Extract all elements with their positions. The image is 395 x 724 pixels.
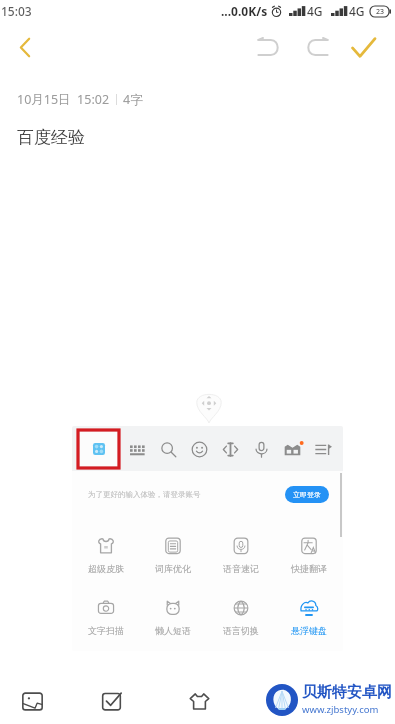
button[interactable]: cam xyxy=(277,430,308,468)
staticText: 悬浮键盘 xyxy=(291,625,327,636)
other: Move xyxy=(196,391,222,423)
button[interactable]: mic xyxy=(246,430,277,468)
button[interactable]: search xyxy=(153,430,184,468)
button[interactable]: menu xyxy=(308,430,339,468)
staticText: 23 xyxy=(376,7,385,17)
staticText: 4G xyxy=(349,3,365,19)
button[interactable]: Back xyxy=(9,31,41,63)
staticText: 语言切换 xyxy=(223,625,259,636)
staticText: ...0.0K/s xyxy=(221,3,268,19)
button[interactable]: Undo xyxy=(251,30,285,64)
staticText: 超级皮肤 xyxy=(88,563,124,574)
staticText: 懒人短语 xyxy=(155,625,191,636)
staticText: 文字扫描 xyxy=(88,625,124,636)
staticText: 4字 xyxy=(123,91,143,108)
staticText: 4G xyxy=(307,3,323,19)
button[interactable]: kb xyxy=(121,430,153,468)
button[interactable]: Redo xyxy=(300,30,334,64)
button[interactable]: Checklist xyxy=(89,682,133,720)
button[interactable]: 文字扫描 xyxy=(72,580,139,642)
button[interactable]: 超级皮肤 xyxy=(72,518,139,580)
button[interactable]: Done xyxy=(346,30,380,64)
button[interactable]: emoji xyxy=(184,430,215,468)
staticText: 立即登录 xyxy=(293,490,321,499)
button[interactable]: 语音速记 xyxy=(207,518,275,580)
staticText: 词库优化 xyxy=(155,563,191,574)
staticText: 快捷翻译 xyxy=(291,563,327,574)
button[interactable]: Gallery xyxy=(10,682,54,720)
button[interactable]: 词库优化 xyxy=(139,518,207,580)
staticText: 15:03 xyxy=(1,3,32,19)
staticText: 10月15日 15:02 xyxy=(17,91,110,108)
button[interactable]: 悬浮键盘 xyxy=(275,580,343,642)
button[interactable]: 懒人短语 xyxy=(139,580,207,642)
button[interactable]: 立即登录 xyxy=(285,486,329,503)
staticText: 为了更好的输入体验，请登录账号 xyxy=(88,490,201,499)
staticText: 贝斯特安卓网 xyxy=(302,683,392,702)
button[interactable]: 快捷翻译 xyxy=(275,518,343,580)
button[interactable]: Style xyxy=(177,682,221,720)
staticText: 语音速记 xyxy=(223,563,259,574)
button[interactable]: Panel keyboard xyxy=(78,430,119,468)
staticText: 百度经验 xyxy=(17,127,85,148)
button[interactable]: 语言切换 xyxy=(207,580,275,642)
staticText: www.zjbstyy.com xyxy=(302,703,379,716)
button[interactable]: voice xyxy=(215,430,246,468)
